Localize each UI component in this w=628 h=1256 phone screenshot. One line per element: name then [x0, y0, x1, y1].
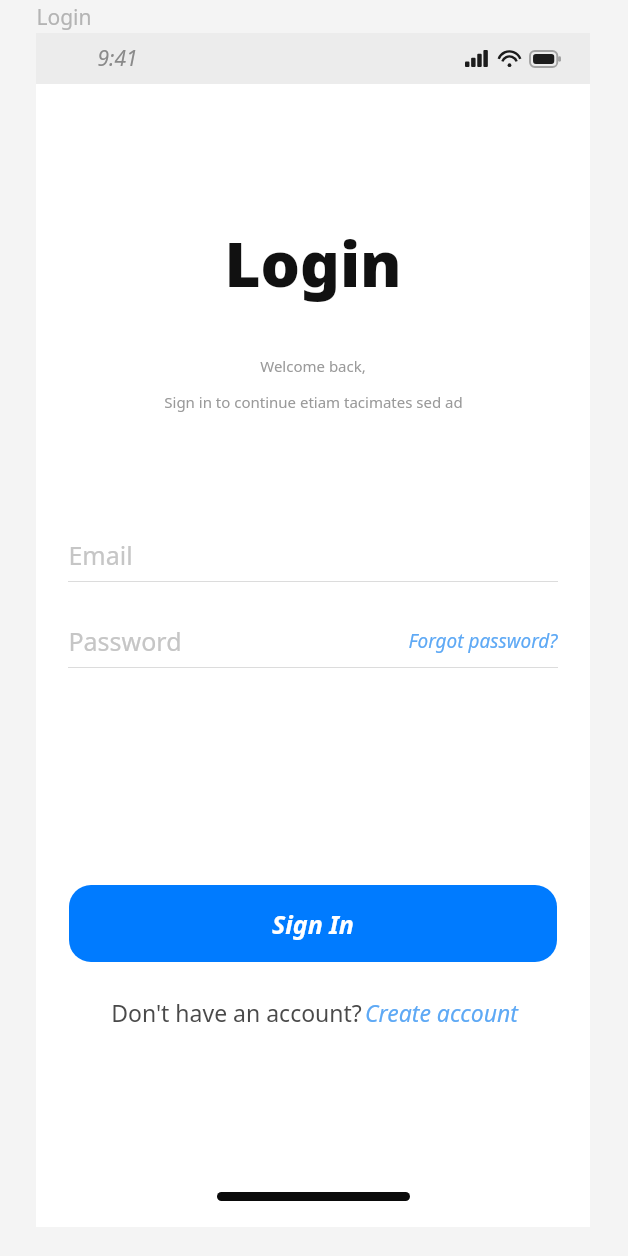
staticText: Password [68, 624, 182, 658]
staticText: Sign In [272, 907, 354, 941]
staticText: Email [68, 538, 133, 572]
staticText: Login [224, 221, 402, 305]
staticText: Don't have an account? [108, 997, 365, 1028]
staticText: 9:41 [97, 44, 138, 73]
staticText: Sign in to continue etiam tacimates sed … [164, 392, 463, 412]
staticText: Login [36, 3, 92, 32]
staticText: Create account [365, 997, 518, 1028]
staticText: Forgot password? [408, 628, 558, 654]
other: Home indicator [217, 1192, 410, 1201]
staticText: Welcome back, [260, 356, 366, 376]
button[interactable]: Email [68, 528, 558, 582]
button[interactable]: Forgot password? [408, 628, 558, 654]
button[interactable]: Password [68, 614, 408, 667]
button[interactable]: Sign In [69, 885, 557, 962]
button[interactable]: Create account [365, 997, 518, 1028]
